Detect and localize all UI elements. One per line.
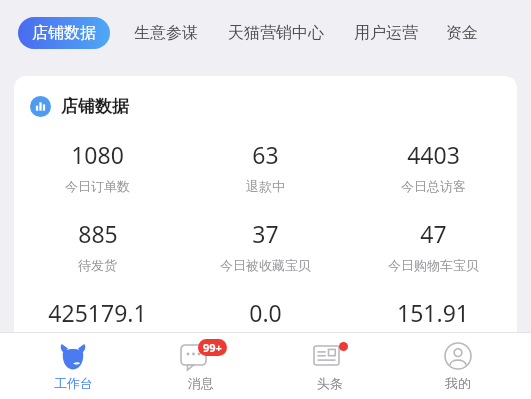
staticText: 47 xyxy=(420,218,447,249)
button[interactable]: 885 xyxy=(14,218,181,273)
other: 头条 xyxy=(313,341,347,371)
staticText: 425179.1 xyxy=(48,297,147,328)
staticText: 消息 xyxy=(188,375,214,391)
staticText: 今日被收藏宝贝 xyxy=(220,257,311,273)
staticText: 今日总访客 xyxy=(401,178,466,194)
staticText: 待发货 xyxy=(78,257,117,273)
staticText: 151.91 xyxy=(397,297,469,328)
other: 我的 xyxy=(444,342,472,370)
staticText: 63 xyxy=(252,139,279,170)
button[interactable]: 37 xyxy=(181,218,349,273)
button[interactable]: 47 xyxy=(349,218,517,273)
staticText: 4403 xyxy=(407,139,460,170)
button[interactable]: 425179.1 xyxy=(14,297,181,328)
staticText: 99+ xyxy=(203,340,222,355)
button[interactable]: 151.91 xyxy=(349,297,517,328)
staticText: 37 xyxy=(252,218,279,249)
button[interactable]: 资金 xyxy=(444,17,480,49)
button[interactable]: 天猫营销中心 xyxy=(226,17,326,49)
button[interactable]: 4403 xyxy=(349,139,517,194)
staticText: 资金 xyxy=(446,23,478,43)
button[interactable]: 用户运营 xyxy=(352,17,420,49)
staticText: 我的 xyxy=(445,375,471,391)
button[interactable]: 店铺数据 xyxy=(14,96,517,117)
staticText: 885 xyxy=(78,218,118,249)
button[interactable]: 我的 xyxy=(403,334,513,397)
other: 工作台 xyxy=(58,341,88,371)
staticText: 店铺数据 xyxy=(61,96,129,117)
staticText: 用户运营 xyxy=(354,23,418,43)
button[interactable]: 消息 99+ xyxy=(146,334,256,397)
staticText: 店铺数据 xyxy=(32,23,96,43)
staticText: 今日订单数 xyxy=(65,178,130,194)
button[interactable]: 0.0 xyxy=(181,297,349,328)
button[interactable]: 1080 xyxy=(14,139,181,194)
button[interactable]: 店铺数据 xyxy=(18,17,110,49)
button[interactable]: 生意参谋 xyxy=(132,17,200,49)
staticText: 0.0 xyxy=(249,297,282,328)
button[interactable]: 头条 xyxy=(275,334,385,397)
button[interactable]: 工作台 xyxy=(18,334,128,397)
button[interactable]: 63 xyxy=(181,139,349,194)
staticText: 今日购物车宝贝 xyxy=(388,257,479,273)
other: 消息 99+ xyxy=(179,340,223,372)
staticText: 工作台 xyxy=(54,375,93,391)
staticText: 退款中 xyxy=(246,178,285,194)
staticText: 1080 xyxy=(71,139,124,170)
staticText: 头条 xyxy=(317,375,343,391)
staticText: 生意参谋 xyxy=(134,23,198,43)
staticText: 天猫营销中心 xyxy=(228,23,324,43)
